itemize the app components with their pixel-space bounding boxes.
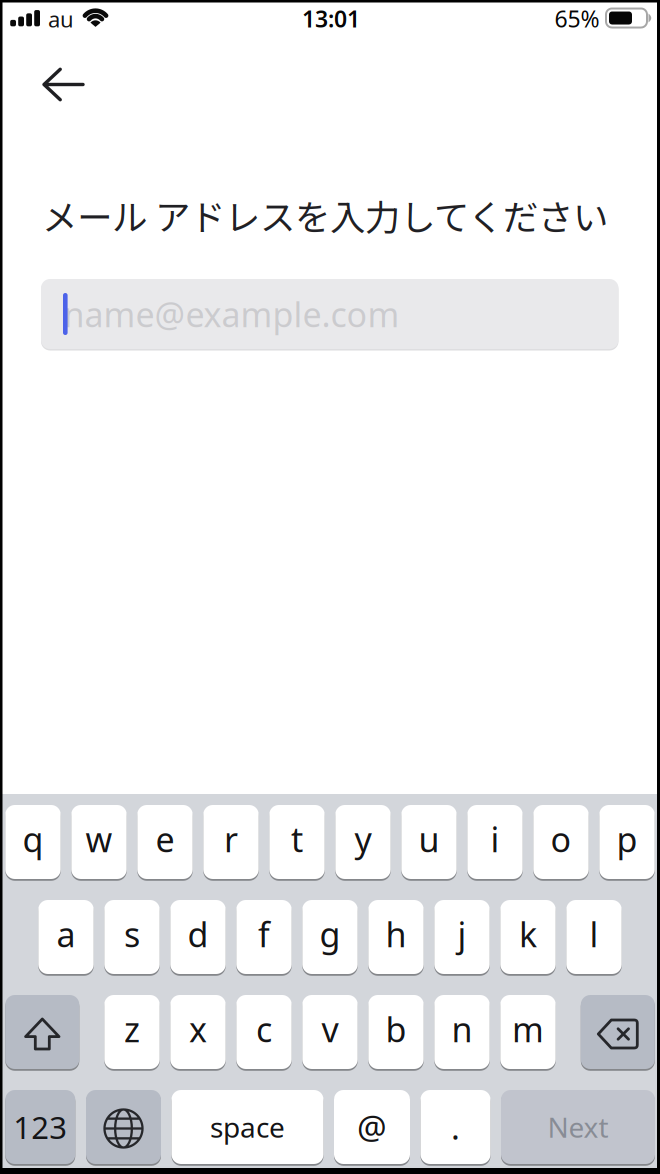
button[interactable]: space (171, 1089, 323, 1165)
staticText: i (490, 816, 499, 862)
staticText: u (418, 816, 439, 862)
staticText: k (519, 911, 537, 957)
button[interactable]: Email address (41, 279, 618, 350)
button[interactable]: j (434, 899, 490, 975)
staticText: 123 (13, 1106, 67, 1148)
button[interactable]: k (500, 899, 556, 975)
staticText: @ (357, 1104, 387, 1149)
button[interactable]: o (533, 804, 589, 880)
button[interactable]: b (368, 994, 424, 1070)
staticText: p (616, 816, 637, 862)
staticText: Next (547, 1108, 608, 1146)
button[interactable]: e (137, 804, 193, 880)
staticText: x (189, 1006, 207, 1052)
staticText: s (124, 911, 140, 957)
staticText: y (354, 816, 371, 862)
staticText: a (56, 911, 75, 957)
button[interactable]: . (420, 1089, 490, 1165)
button[interactable]: l (566, 899, 622, 975)
button[interactable]: @ (334, 1089, 410, 1165)
button[interactable]: w (71, 804, 127, 880)
staticText: q (22, 816, 43, 862)
staticText: d (187, 911, 208, 957)
staticText: z (124, 1006, 140, 1052)
staticText: . (451, 1104, 460, 1149)
staticText: b (385, 1006, 406, 1052)
staticText: m (512, 1006, 544, 1052)
staticText: l (589, 911, 598, 957)
staticText: w (85, 816, 112, 862)
staticText: n (451, 1006, 472, 1052)
staticText: f (258, 911, 270, 957)
button[interactable]: h (368, 899, 424, 975)
button[interactable]: Shift (5, 994, 79, 1070)
button[interactable]: Back (30, 55, 97, 114)
button[interactable]: Delete (581, 994, 655, 1070)
button[interactable]: m (500, 994, 556, 1070)
button[interactable]: d (170, 899, 226, 975)
button[interactable]: r (203, 804, 259, 880)
staticText: メール アドレスを入力してください (42, 189, 608, 241)
button[interactable]: n (434, 994, 490, 1070)
staticText: g (319, 911, 340, 957)
button[interactable]: u (401, 804, 457, 880)
button[interactable]: g (302, 899, 358, 975)
button[interactable]: s (104, 899, 160, 975)
button[interactable]: f (236, 899, 292, 975)
staticText: space (210, 1108, 285, 1146)
staticText: 13:01 (302, 3, 360, 34)
button[interactable]: i (467, 804, 523, 880)
button[interactable]: y (335, 804, 391, 880)
staticText: j (457, 911, 466, 957)
button[interactable]: t (269, 804, 325, 880)
button[interactable]: q (5, 804, 61, 880)
staticText: c (256, 1006, 272, 1052)
staticText: t (291, 816, 303, 862)
staticText: 65% (554, 3, 599, 34)
button[interactable]: a (38, 899, 94, 975)
button[interactable]: p (599, 804, 655, 880)
button[interactable]: Numbers (5, 1089, 75, 1165)
button[interactable]: v (302, 994, 358, 1070)
button[interactable]: Next (501, 1089, 655, 1165)
button[interactable]: x (170, 994, 226, 1070)
button[interactable]: Next keyboard (86, 1089, 161, 1165)
staticText: r (224, 816, 238, 862)
button[interactable]: z (104, 994, 160, 1070)
staticText: e (155, 816, 174, 862)
staticText: o (550, 816, 571, 862)
staticText: h (385, 911, 406, 957)
button[interactable]: c (236, 994, 292, 1070)
staticText: v (321, 1006, 338, 1052)
staticText: name@example.com (63, 291, 399, 337)
staticText: au (48, 4, 74, 34)
